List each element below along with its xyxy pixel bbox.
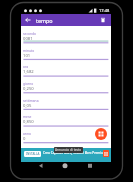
staticText: ora [23, 64, 29, 68]
button[interactable]: Add [95, 128, 107, 140]
button[interactable]: minuto [23, 45, 108, 62]
staticText: mese [23, 114, 32, 118]
staticText: 101 [23, 53, 31, 59]
staticText: tempo [36, 17, 53, 24]
staticText: settimana [23, 98, 39, 102]
staticText: 0 [23, 136, 26, 142]
button[interactable]: mese [23, 111, 108, 128]
button[interactable]: settimana [23, 95, 108, 112]
staticText: Crea Capitolo Libro, Sezioni libro Premi… [43, 151, 106, 155]
button[interactable]: ora [23, 61, 108, 78]
staticText: Annuncio di testo [55, 148, 82, 152]
staticText: 1,682 [23, 69, 34, 75]
button[interactable]: giorno [23, 78, 108, 95]
button[interactable]: Install app [103, 150, 109, 157]
staticText: 17:48 [99, 8, 110, 13]
button[interactable]: Back [21, 14, 34, 26]
button[interactable]: secondo [23, 28, 108, 45]
staticText: INSTALLA [26, 152, 40, 156]
staticText: 0,05 [23, 103, 32, 109]
staticText: 0,250 [23, 86, 34, 92]
button[interactable]: INSTALLA [24, 151, 41, 157]
button[interactable]: anno [23, 128, 108, 145]
staticText: secondo [23, 31, 37, 35]
staticText: 0,850 [23, 119, 34, 125]
staticText: giorno [23, 81, 34, 85]
staticText: anno [23, 131, 31, 135]
staticText: minuto [23, 48, 35, 52]
staticText: 0081 [23, 36, 33, 42]
button[interactable]: Delete [97, 14, 109, 26]
